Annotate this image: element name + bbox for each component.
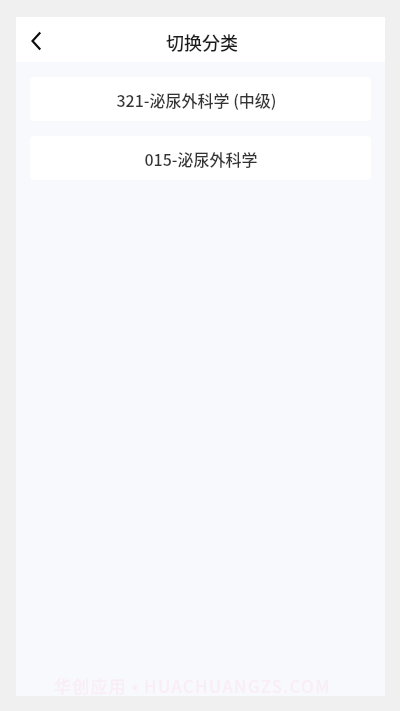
staticText: 切换分类: [166, 29, 238, 55]
button[interactable]: Back: [14, 19, 58, 63]
staticText: 321-泌尿外科学 (中级): [116, 88, 277, 111]
button[interactable]: 015-泌尿外科学: [30, 136, 371, 180]
staticText: 015-泌尿外科学: [144, 147, 258, 170]
button[interactable]: 321-泌尿外科学 (中级): [30, 77, 371, 121]
staticText: 华创应用 • HUACHUANGZS.COM: [54, 673, 331, 698]
